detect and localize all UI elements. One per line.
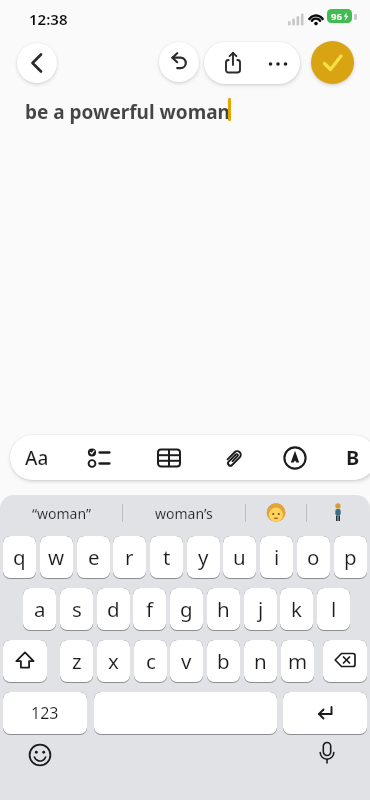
staticText: 12:38 [29,9,68,29]
staticText: m [288,647,308,675]
button[interactable]: z [60,640,93,683]
button[interactable] [210,435,258,480]
button[interactable]: d [97,588,130,631]
button[interactable]: l [317,588,350,631]
staticText: B [346,444,360,471]
staticText: d [107,595,120,623]
button[interactable]: y [187,536,220,579]
button[interactable] [3,640,47,683]
button[interactable]: x [97,640,130,683]
staticText: b [217,647,230,675]
button[interactable] [145,435,193,480]
staticText: s [72,595,82,623]
button[interactable]: n [244,640,277,683]
staticText: c [146,647,156,675]
button[interactable]: r [113,536,146,579]
button[interactable]: v [170,640,203,683]
staticText: x [108,647,119,675]
button[interactable] [313,739,341,769]
button[interactable]: h [207,588,240,631]
button[interactable]: s [60,588,93,631]
staticText: i [274,543,280,571]
button[interactable]: p [334,536,367,579]
button[interactable] [74,435,122,480]
staticText: f [146,595,154,623]
button[interactable] [283,692,367,735]
button[interactable] [323,640,367,683]
button[interactable]: i [260,536,293,579]
staticText: q [13,543,26,571]
staticText: 96 [331,10,342,23]
staticText: k [291,595,302,623]
button[interactable] [26,741,54,769]
staticText: p [344,543,357,571]
button[interactable] [94,692,277,735]
staticText: e [88,543,100,571]
button[interactable] [271,435,319,480]
staticText: g [180,595,193,623]
button[interactable]: g [170,588,203,631]
staticText: “woman” [32,504,91,523]
staticText: Aa [25,445,49,471]
button[interactable]: j [244,588,277,631]
button[interactable] [245,495,306,531]
staticText: z [72,647,82,675]
staticText: h [217,595,230,623]
button[interactable]: w [40,536,73,579]
staticText: j [258,595,264,623]
staticText: l [331,595,337,623]
staticText: a [34,595,46,623]
button[interactable]: woman’s [122,495,245,531]
button[interactable]: 123 [3,692,87,735]
button[interactable]: c [134,640,167,683]
staticText: t [163,543,171,571]
button[interactable] [213,42,253,84]
button[interactable] [306,495,370,531]
button[interactable]: B [332,435,370,480]
staticText: r [125,543,134,571]
button[interactable] [311,41,354,84]
button[interactable]: o [297,536,330,579]
staticText: v [181,647,192,675]
button[interactable]: m [281,640,314,683]
button[interactable]: Aa [13,435,61,480]
staticText: o [307,543,320,571]
button[interactable]: b [207,640,240,683]
staticText: w [48,543,65,571]
button[interactable]: q [3,536,36,579]
button[interactable]: e [77,536,110,579]
button[interactable] [17,43,57,83]
staticText: u [233,543,246,571]
staticText: 123 [31,702,59,724]
button[interactable]: t [150,536,183,579]
staticText: n [254,647,267,675]
button[interactable]: a [23,588,56,631]
button[interactable] [159,42,199,82]
staticText: be a powerful woman [25,99,230,125]
button[interactable]: f [133,588,166,631]
button[interactable] [258,42,298,84]
button[interactable]: u [223,536,256,579]
button[interactable]: k [280,588,313,631]
button[interactable]: “woman” [0,495,122,531]
staticText: woman’s [155,504,213,523]
staticText: y [198,543,209,571]
